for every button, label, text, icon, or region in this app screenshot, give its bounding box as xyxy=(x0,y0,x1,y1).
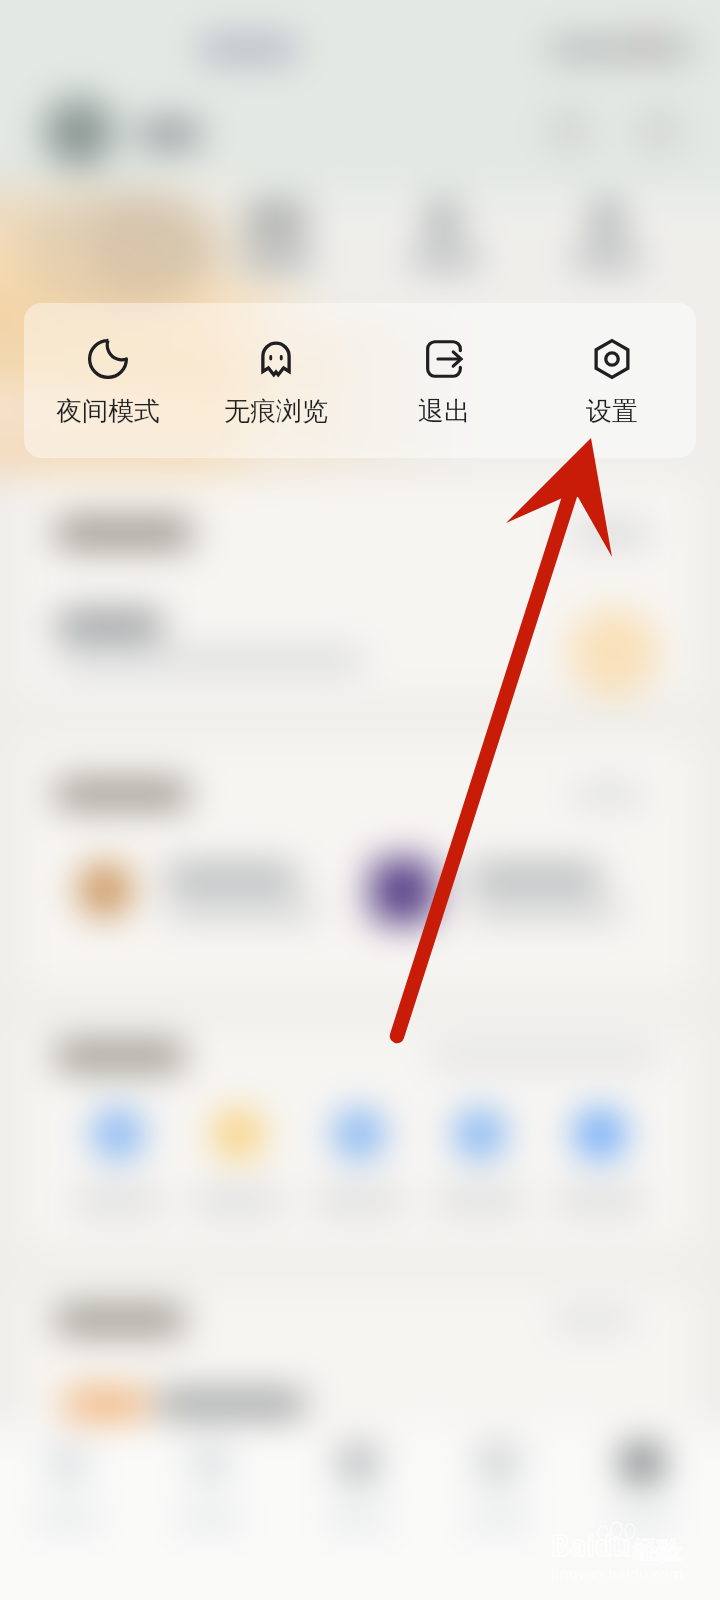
button[interactable]: Night mode xyxy=(24,303,192,458)
other: Night mode xyxy=(85,336,131,382)
button[interactable]: Incognito xyxy=(192,303,360,458)
staticText: 设置 xyxy=(586,395,638,428)
staticText: 退出 xyxy=(418,395,470,428)
other: Exit xyxy=(421,336,467,382)
button[interactable]: Exit xyxy=(360,303,528,458)
button[interactable]: Settings xyxy=(528,303,696,458)
staticText: 夜间模式 xyxy=(56,395,160,428)
other: Incognito xyxy=(253,336,299,382)
other: Settings xyxy=(589,336,635,382)
staticText: 无痕浏览 xyxy=(224,395,328,428)
